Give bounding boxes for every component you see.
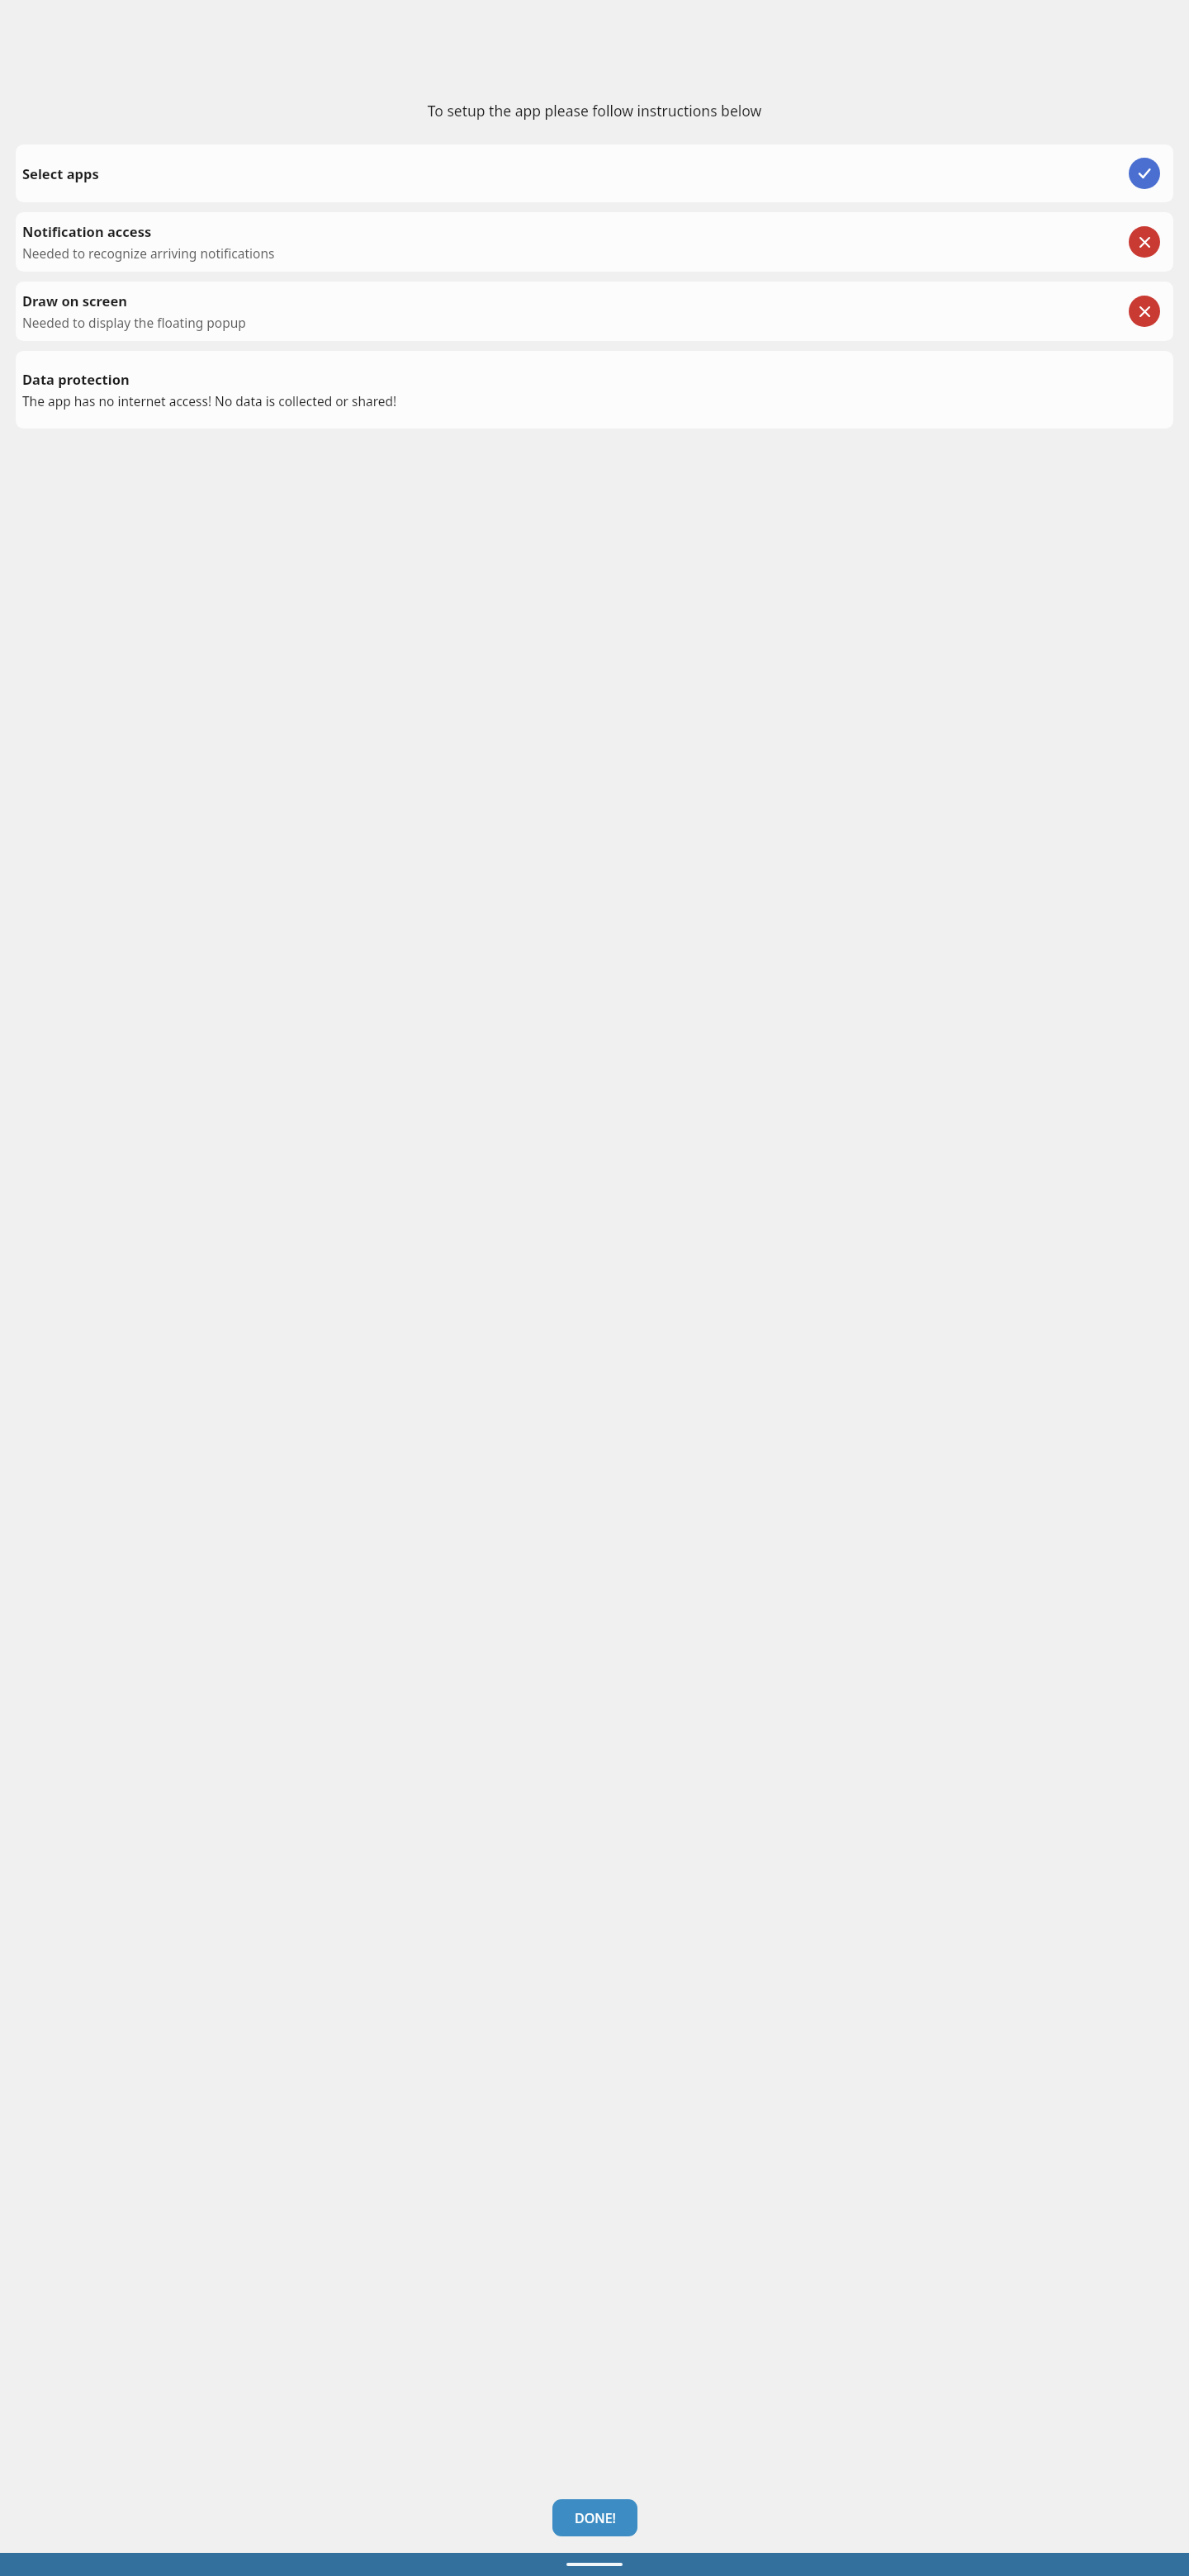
button[interactable]: Notification access — [16, 212, 1173, 272]
staticText: Notification access — [22, 222, 152, 240]
staticText: The app has no internet access! No data … — [22, 392, 397, 410]
button[interactable]: Granted — [1129, 158, 1160, 189]
button[interactable]: Not granted — [1129, 296, 1160, 327]
button[interactable]: Select apps — [16, 144, 1173, 202]
button[interactable]: Data protection — [16, 351, 1173, 429]
staticText: Data protection — [22, 370, 130, 388]
staticText: Needed to display the floating popup — [22, 314, 246, 331]
staticText: Select apps — [22, 164, 99, 182]
staticText: DONE! — [575, 2509, 616, 2527]
staticText: To setup the app please follow instructi… — [38, 101, 1151, 121]
staticText: Needed to recognize arriving notificatio… — [22, 244, 275, 262]
button[interactable]: Not granted — [1129, 226, 1160, 258]
staticText: Draw on screen — [22, 291, 128, 310]
button[interactable]: DONE! — [552, 2499, 637, 2536]
button[interactable]: Draw on screen — [16, 282, 1173, 341]
